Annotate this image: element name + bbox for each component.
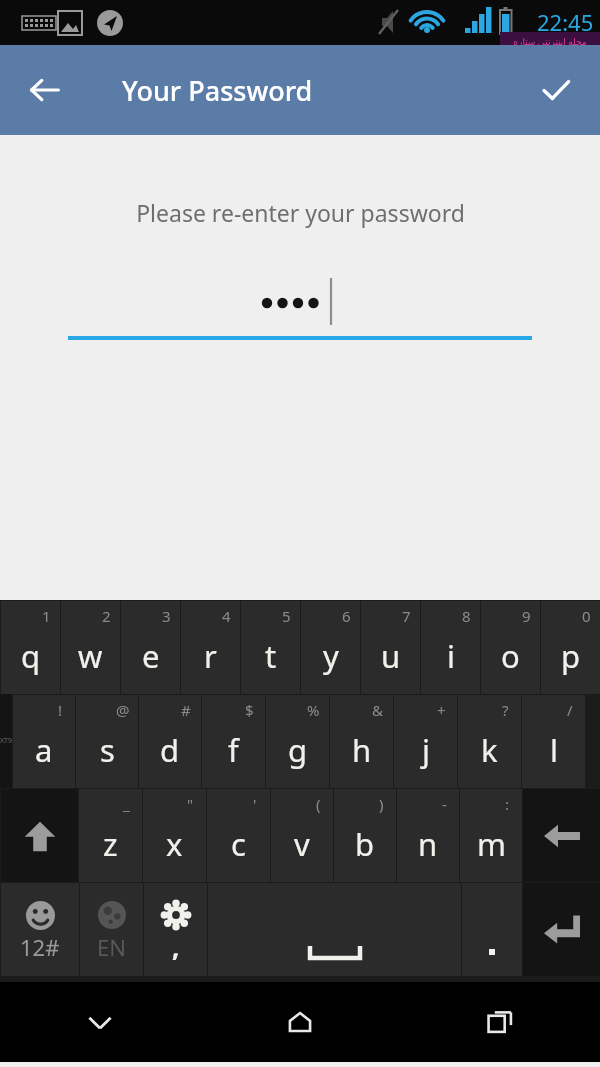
- staticText: p: [561, 635, 581, 677]
- button[interactable]: 1: [1, 601, 60, 694]
- button[interactable]: (: [271, 789, 333, 882]
- staticText: e: [142, 635, 160, 677]
- staticText: مجله اینترنتی ستاره: [513, 35, 587, 47]
- staticText: _: [123, 794, 130, 814]
- button[interactable]: ,: [144, 883, 207, 976]
- button[interactable]: Space: [208, 883, 461, 976]
- staticText: ?: [502, 700, 509, 720]
- button[interactable]: Back: [14, 59, 76, 121]
- button[interactable]: 0: [541, 601, 600, 694]
- button[interactable]: 5: [241, 601, 300, 694]
- button[interactable]: ): [334, 789, 396, 882]
- button[interactable]: 8: [421, 601, 480, 694]
- staticText: x: [166, 823, 183, 865]
- button[interactable]: Enter: [523, 883, 600, 976]
- button[interactable]: Period: [462, 883, 522, 976]
- staticText: o: [501, 635, 520, 677]
- button[interactable]: ": [143, 789, 206, 882]
- staticText: i: [447, 635, 455, 677]
- staticText: ,: [172, 929, 180, 964]
- staticText: #: [181, 700, 191, 720]
- button[interactable]: +: [394, 695, 457, 788]
- button[interactable]: @: [76, 695, 138, 788]
- button[interactable]: %: [266, 695, 329, 788]
- staticText: r: [204, 635, 217, 677]
- staticText: /: [567, 700, 573, 720]
- staticText: :: [505, 794, 510, 814]
- staticText: &: [372, 700, 383, 720]
- staticText: w: [78, 635, 103, 677]
- button[interactable]: 2: [61, 601, 120, 694]
- button[interactable]: 6: [301, 601, 360, 694]
- staticText: 12#: [20, 932, 60, 962]
- button[interactable]: 3: [121, 601, 180, 694]
- staticText: 4: [222, 606, 231, 626]
- staticText: j: [422, 729, 430, 771]
- staticText: 9: [522, 606, 531, 626]
- staticText: k: [481, 729, 498, 771]
- button[interactable]: Hide keyboard: [0, 982, 200, 1062]
- staticText: a: [35, 729, 53, 771]
- staticText: (: [316, 794, 321, 814]
- staticText: EN: [97, 932, 126, 962]
- button[interactable]: ?: [458, 695, 521, 788]
- staticText: 8: [462, 606, 471, 626]
- button[interactable]: /: [522, 695, 585, 788]
- button[interactable]: 7: [361, 601, 420, 694]
- button[interactable]: Recent apps: [400, 982, 600, 1062]
- staticText: 7: [402, 606, 411, 626]
- button[interactable]: !: [13, 695, 75, 788]
- button[interactable]: ': [207, 789, 270, 882]
- staticText: 22:45: [537, 7, 594, 37]
- staticText: d: [160, 729, 180, 771]
- button[interactable]: _: [79, 789, 142, 882]
- button[interactable]: Confirm: [524, 58, 588, 122]
- staticText: t: [265, 635, 277, 677]
- button[interactable]: EN: [80, 883, 143, 976]
- staticText: b: [355, 823, 375, 865]
- staticText: n: [418, 823, 438, 865]
- staticText: 5: [282, 606, 291, 626]
- staticText: 0: [582, 606, 591, 626]
- staticText: m: [477, 823, 506, 865]
- button[interactable]: Backspace: [523, 789, 600, 882]
- staticText: %: [307, 700, 320, 720]
- staticText: g: [288, 729, 308, 771]
- button[interactable]: -: [397, 789, 459, 882]
- button[interactable]: :: [460, 789, 522, 882]
- staticText: Please re-enter your password: [136, 197, 465, 228]
- staticText: +: [437, 700, 446, 720]
- staticText: f: [228, 729, 239, 771]
- button[interactable]: Shift: [1, 789, 78, 882]
- staticText: 3: [162, 606, 171, 626]
- staticText: 2: [102, 606, 111, 626]
- staticText: 1: [42, 606, 51, 626]
- staticText: z: [103, 823, 118, 865]
- staticText: $: [245, 700, 254, 720]
- staticText: l: [550, 729, 558, 771]
- staticText: XT9: [0, 736, 12, 746]
- staticText: @: [116, 700, 130, 720]
- staticText: s: [100, 729, 115, 771]
- staticText: Your Password: [122, 72, 313, 109]
- staticText: h: [352, 729, 372, 771]
- staticText: !: [58, 700, 63, 720]
- staticText: v: [294, 823, 310, 865]
- staticText: ": [187, 794, 194, 814]
- staticText: q: [21, 635, 41, 677]
- staticText: ): [379, 794, 384, 814]
- staticText: y: [323, 635, 339, 677]
- button[interactable]: #: [139, 695, 201, 788]
- button[interactable]: 9: [481, 601, 540, 694]
- staticText: ': [253, 794, 257, 814]
- staticText: -: [442, 794, 447, 814]
- button[interactable]: Home: [200, 982, 400, 1062]
- button[interactable]: 4: [181, 601, 240, 694]
- button[interactable]: &: [330, 695, 393, 788]
- button[interactable]: $: [202, 695, 265, 788]
- staticText: 6: [342, 606, 351, 626]
- staticText: u: [381, 635, 401, 677]
- button[interactable]: 12#: [1, 883, 79, 976]
- staticText: c: [231, 823, 246, 865]
